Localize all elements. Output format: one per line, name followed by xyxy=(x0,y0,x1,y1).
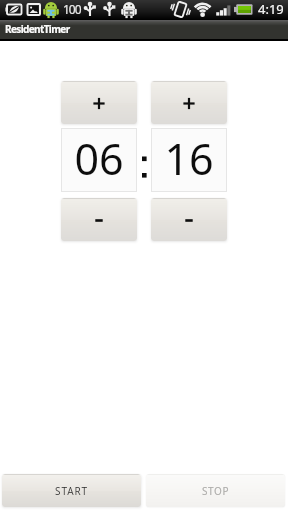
staticText: STOP xyxy=(202,484,230,498)
staticText: START xyxy=(55,484,89,498)
staticText: 06 xyxy=(74,129,124,188)
button[interactable]: STOP xyxy=(146,474,285,507)
button[interactable]: START xyxy=(2,474,141,507)
button[interactable]: Increase xyxy=(61,81,137,124)
staticText: 4:19 xyxy=(258,0,284,18)
button[interactable]: Decrease xyxy=(61,198,137,241)
staticText: ResidentTimer xyxy=(5,22,70,36)
button[interactable]: Increase xyxy=(151,81,227,124)
staticText: 16 xyxy=(164,129,214,188)
button[interactable]: Decrease xyxy=(151,198,227,241)
staticText: 100 xyxy=(63,1,81,17)
